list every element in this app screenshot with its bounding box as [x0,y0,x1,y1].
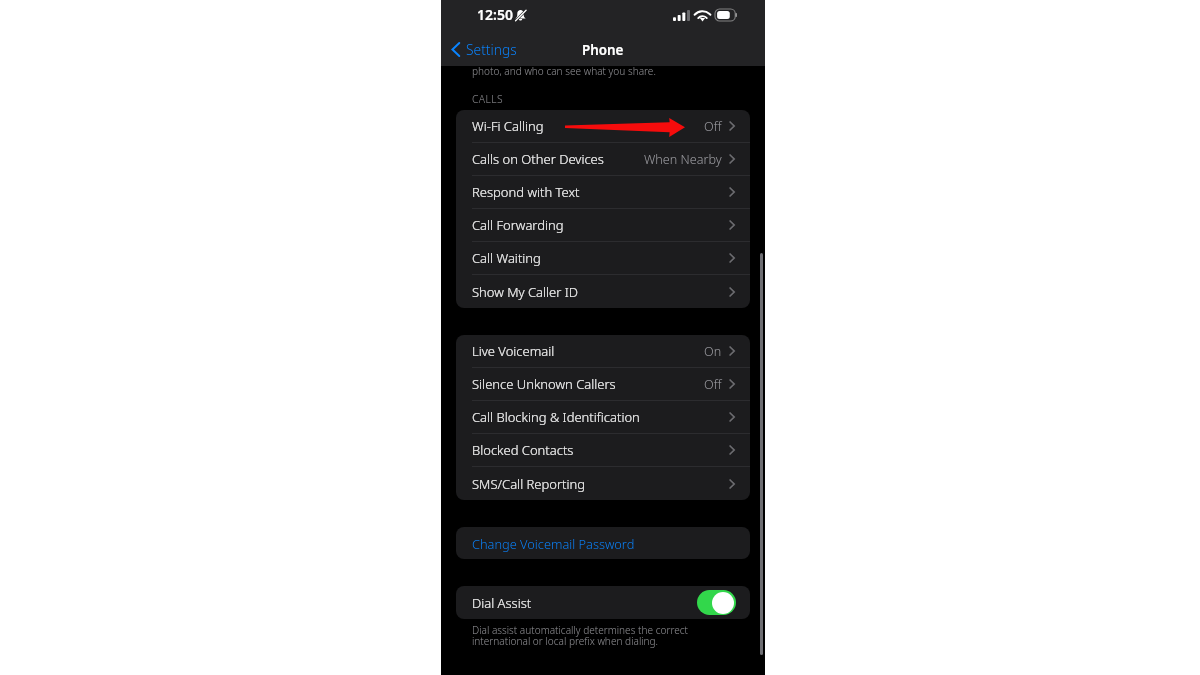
staticText: Settings [466,40,517,59]
button[interactable]: Call Forwarding [456,209,750,241]
button[interactable]: Wi-Fi Calling [456,110,750,142]
staticText: Blocked Contacts [472,441,574,459]
button[interactable]: Silence Unknown Callers [456,368,750,400]
staticText: Respond with Text [472,183,580,201]
staticText: Call Waiting [472,249,541,267]
button[interactable]: Calls on Other Devices [456,143,750,175]
button[interactable]: SMS/Call Reporting [456,467,750,500]
staticText: Silence Unknown Callers [472,375,616,393]
staticText: Show My Caller ID [472,283,579,301]
staticText: SMS/Call Reporting [472,475,586,493]
staticText: photo, and who can see what you share. [472,64,656,78]
staticText: Off [704,118,722,135]
staticText: CALLS [472,92,503,106]
staticText: On [704,343,722,360]
staticText: Dial assist automatically determines the… [472,623,688,648]
staticText: When Nearby [644,151,722,168]
staticText: Phone [582,41,624,59]
button[interactable]: Change Voicemail Password [456,527,750,559]
staticText: Off [704,376,722,393]
staticText: Dial Assist [472,594,532,612]
button[interactable]: Dial Assist toggle [697,590,736,615]
staticText: Change Voicemail Password [472,535,635,552]
button[interactable]: Call Blocking & Identification [456,401,750,433]
button[interactable]: Show My Caller ID [456,275,750,308]
staticText: Call Forwarding [472,216,564,234]
button[interactable]: Call Waiting [456,242,750,274]
button[interactable]: Back to Settings [446,36,522,63]
button[interactable]: Respond with Text [456,176,750,208]
other: Silent mode [514,9,527,22]
button[interactable]: Blocked Contacts [456,434,750,466]
staticText: Wi-Fi Calling [472,117,544,135]
button[interactable]: Live Voicemail [456,335,750,367]
staticText: Call Blocking & Identification [472,408,640,426]
staticText: 12:50 [477,5,513,24]
staticText: Live Voicemail [472,342,555,360]
button[interactable]: Dial Assist [456,586,750,619]
staticText: Calls on Other Devices [472,150,604,168]
